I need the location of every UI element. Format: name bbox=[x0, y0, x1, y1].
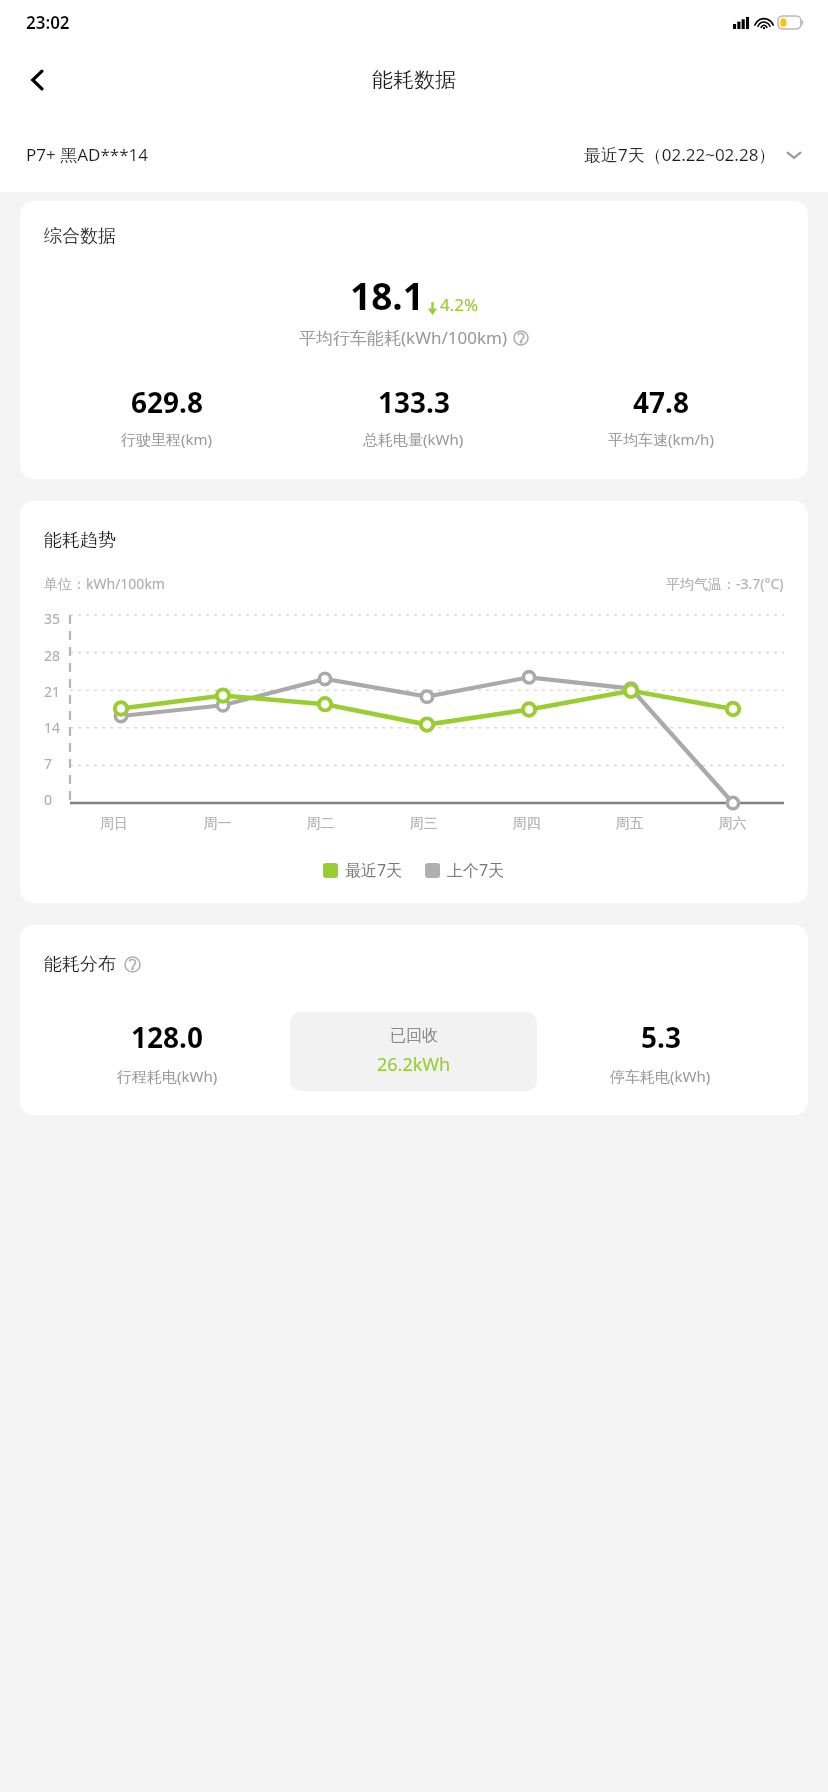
staticText: 平均气温：-3.7(°C) bbox=[666, 574, 784, 593]
button[interactable]: Back bbox=[12, 54, 64, 106]
staticText: P7+ 黑AD***14 bbox=[26, 143, 148, 166]
staticText: 7 bbox=[44, 754, 53, 773]
staticText: 行程耗电(kWh) bbox=[117, 1066, 218, 1086]
staticText: 0 bbox=[44, 790, 53, 809]
staticText: 能耗分布 bbox=[44, 953, 116, 976]
staticText: 47.8 bbox=[633, 383, 689, 421]
staticText: 最近7天（02.22~02.28） bbox=[584, 143, 776, 166]
staticText: 上个7天 bbox=[447, 859, 505, 881]
staticText: 21 bbox=[44, 682, 61, 701]
staticText: 单位：kWh/100km bbox=[44, 574, 165, 593]
staticText: 4.2% bbox=[440, 293, 479, 316]
staticText: 周六 bbox=[681, 815, 784, 833]
staticText: 629.8 bbox=[131, 383, 203, 421]
staticText: 周四 bbox=[475, 815, 578, 833]
staticText: 综合数据 bbox=[44, 225, 116, 248]
staticText: 平均车速(km/h) bbox=[608, 429, 714, 449]
staticText: 18.1 bbox=[350, 270, 424, 320]
staticText: 周二 bbox=[269, 815, 372, 833]
staticText: 14 bbox=[44, 718, 61, 737]
staticText: 能耗数据 bbox=[372, 67, 456, 93]
staticText: 128.0 bbox=[131, 1018, 203, 1056]
staticText: 已回收 bbox=[390, 1026, 438, 1046]
staticText: 能耗趋势 bbox=[44, 529, 116, 552]
staticText: 周五 bbox=[578, 815, 681, 833]
staticText: 最近7天 bbox=[345, 859, 403, 881]
staticText: 行驶里程(km) bbox=[121, 429, 213, 449]
staticText: 23:02 bbox=[26, 11, 70, 34]
staticText: 26.2kWh bbox=[377, 1052, 451, 1077]
button[interactable]: 最近7天（02.22~02.28） bbox=[584, 143, 802, 166]
staticText: 28 bbox=[44, 646, 61, 665]
staticText: 总耗电量(kWh) bbox=[363, 429, 464, 449]
staticText: 周日 bbox=[62, 815, 166, 833]
staticText: 133.3 bbox=[378, 383, 450, 421]
staticText: 周三 bbox=[372, 815, 475, 833]
staticText: 平均行车能耗(kWh/100km) bbox=[299, 326, 508, 349]
staticText: 周一 bbox=[166, 815, 269, 833]
staticText: 35 bbox=[44, 609, 61, 628]
staticText: 停车耗电(kWh) bbox=[610, 1066, 711, 1086]
staticText: 5.3 bbox=[641, 1018, 681, 1056]
